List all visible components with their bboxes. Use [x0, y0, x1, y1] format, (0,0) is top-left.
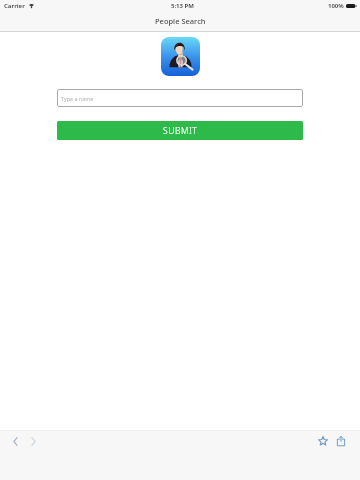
button[interactable]: SUBMIT [57, 121, 303, 140]
staticText: Carrier [4, 2, 25, 10]
staticText: People Search [155, 16, 206, 26]
button[interactable]: Type a name [57, 89, 303, 107]
button[interactable]: Back [7, 433, 23, 449]
staticText: 5:13 PM [171, 2, 194, 10]
button[interactable]: Share [333, 433, 349, 449]
staticText: SUBMIT [163, 125, 198, 137]
staticText: Type a name [61, 95, 94, 102]
button[interactable]: People Search app icon [161, 37, 200, 76]
button[interactable]: Bookmarks [315, 433, 331, 449]
staticText: 100% [328, 2, 344, 10]
button[interactable]: Forward [25, 433, 41, 449]
